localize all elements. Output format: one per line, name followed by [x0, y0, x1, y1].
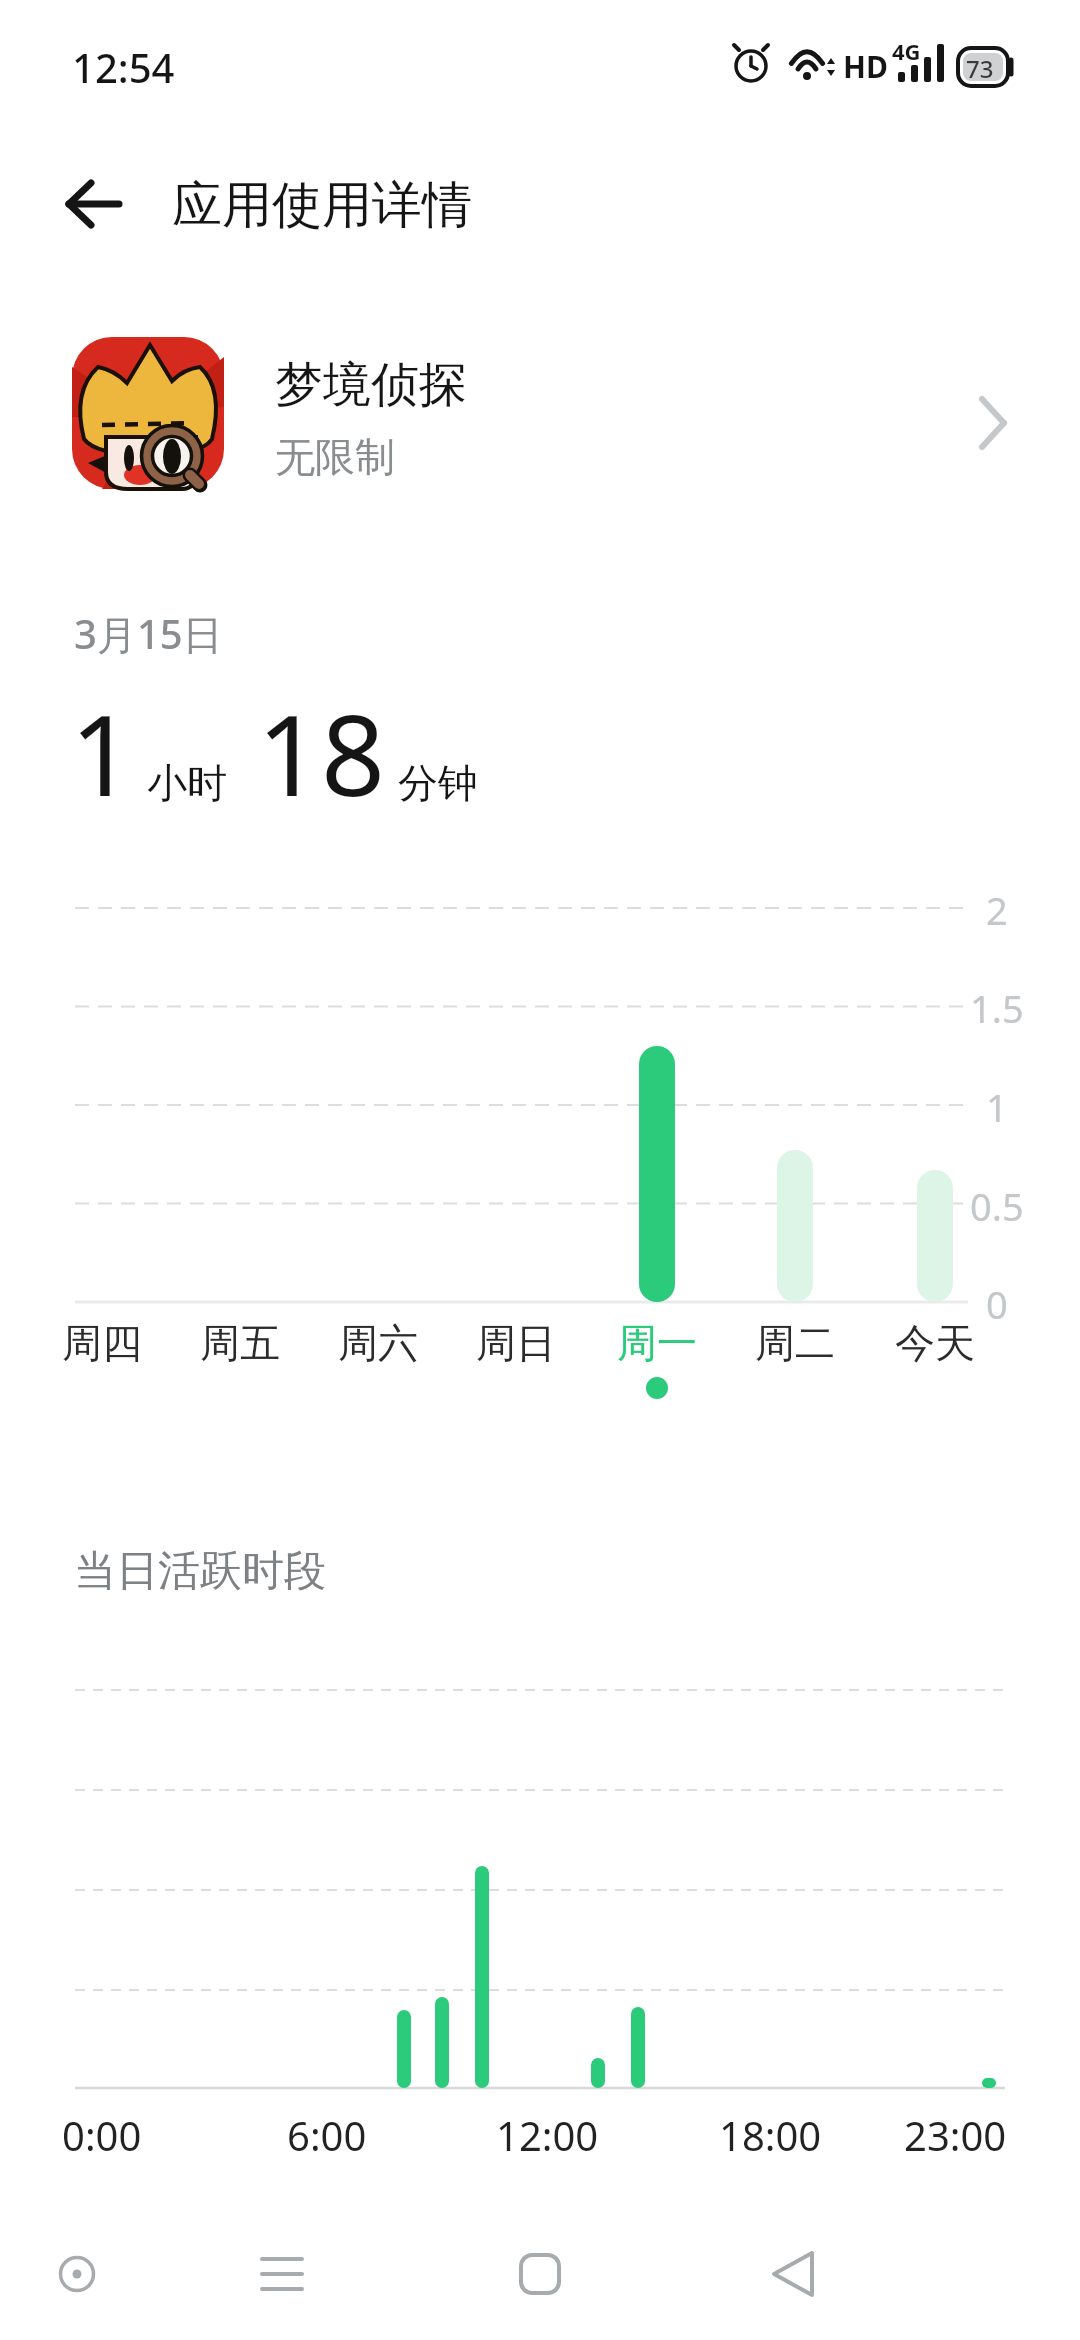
staticText: 今天	[895, 1318, 975, 1368]
button[interactable]: 周六	[298, 1318, 458, 1368]
staticText: 1.5	[970, 982, 1024, 1034]
button[interactable]: 周五	[160, 1318, 320, 1368]
staticText: 73	[966, 52, 994, 85]
staticText: 周日	[476, 1318, 556, 1368]
staticText: 18	[257, 676, 386, 829]
staticText: HD	[843, 46, 888, 87]
staticText: 12:54	[72, 40, 175, 94]
staticText: 4G	[892, 36, 921, 66]
button[interactable]	[245, 2237, 319, 2311]
staticText: 12:00	[496, 2108, 599, 2162]
button[interactable]	[40, 2237, 114, 2311]
staticText: 应用使用详情	[172, 174, 472, 237]
staticText: 3月15日	[74, 606, 223, 661]
staticText: 分钟	[398, 758, 478, 808]
staticText: 1	[70, 676, 135, 829]
button[interactable]	[758, 2237, 832, 2311]
staticText: 梦境侦探	[275, 355, 467, 415]
button[interactable]: 周一	[577, 1318, 737, 1368]
staticText: 周四	[62, 1318, 142, 1368]
button[interactable]: 周日	[436, 1318, 596, 1368]
staticText: 无限制	[275, 432, 395, 482]
staticText: 0	[986, 1278, 1008, 1330]
staticText: 当日活跃时段	[74, 1545, 326, 1598]
staticText: 周六	[338, 1318, 418, 1368]
button[interactable]	[503, 2237, 577, 2311]
button[interactable]	[55, 172, 135, 236]
staticText: 0.5	[970, 1180, 1024, 1232]
staticText: 小时	[147, 758, 227, 808]
button[interactable]: 今天	[855, 1318, 1015, 1368]
button[interactable]: 梦境侦探	[0, 330, 1080, 500]
staticText: 23:00	[904, 2108, 1007, 2162]
staticText: 0:00	[62, 2108, 142, 2162]
staticText: 18:00	[719, 2108, 822, 2162]
staticText: 周一	[617, 1318, 697, 1368]
staticText: 1	[986, 1081, 1008, 1133]
staticText: 周二	[755, 1318, 835, 1368]
button[interactable]: 周二	[715, 1318, 875, 1368]
staticText: 6:00	[287, 2108, 367, 2162]
staticText: 2	[986, 884, 1008, 936]
button[interactable]: 周四	[22, 1318, 182, 1368]
staticText: 周五	[200, 1318, 280, 1368]
